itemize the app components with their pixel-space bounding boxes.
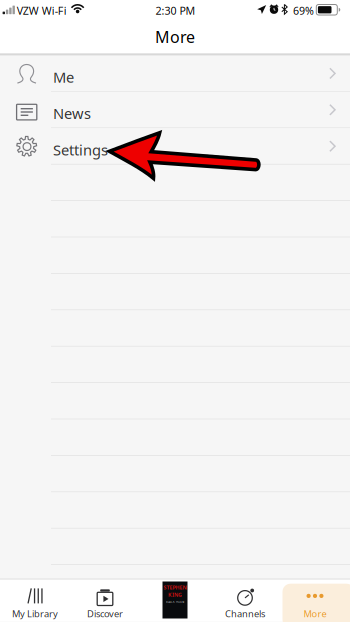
staticText: More — [155, 26, 195, 47]
staticText: Channels — [225, 607, 265, 620]
button[interactable]: More — [280, 578, 350, 621]
button[interactable]: Discover — [70, 578, 140, 621]
staticText: 2:30 PM — [155, 4, 195, 18]
button[interactable]: My Library — [0, 578, 70, 621]
staticText: My Library — [12, 607, 58, 620]
staticText: News — [53, 104, 91, 123]
button[interactable]: Settings — [0, 128, 350, 165]
button[interactable]: Me — [0, 55, 350, 92]
staticText: More — [303, 607, 326, 620]
staticText: 69% — [293, 4, 314, 18]
staticText: STEPHEN — [163, 584, 186, 591]
staticText: VZW Wi-Fi — [17, 4, 67, 18]
staticText: Discover — [87, 607, 123, 620]
staticText: KING — [168, 591, 182, 598]
staticText: BLACK HOUSE — [166, 600, 184, 604]
staticText: Me — [53, 67, 74, 87]
button[interactable]: News — [0, 92, 350, 128]
staticText: Settings — [53, 140, 108, 159]
button[interactable]: Current book — [140, 578, 210, 621]
button[interactable]: Channels — [210, 578, 280, 621]
